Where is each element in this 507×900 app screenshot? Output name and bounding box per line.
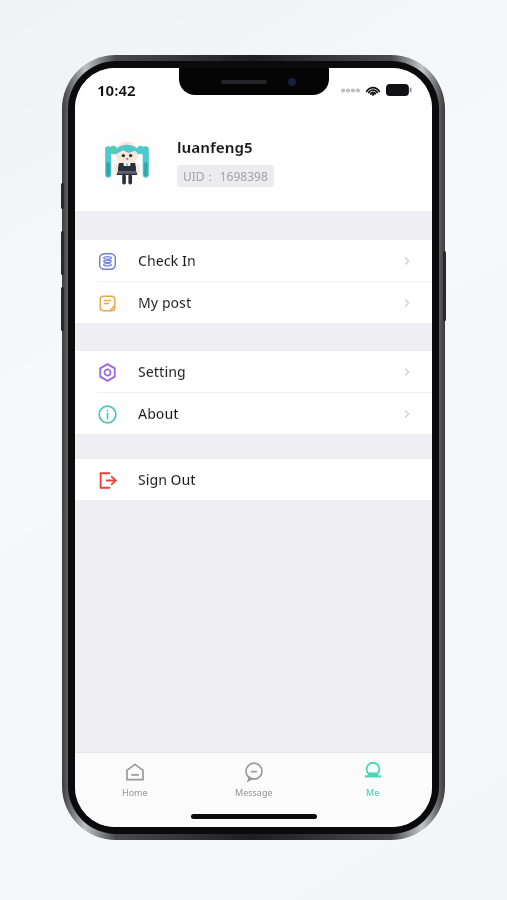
button[interactable]: Me	[313, 753, 432, 805]
staticText: Setting	[138, 362, 400, 381]
other: Open	[400, 407, 414, 421]
staticText: My post	[138, 293, 400, 312]
staticText: luanfeng5	[177, 137, 253, 157]
button[interactable]: Home	[75, 753, 194, 805]
staticText: UID： 1698398	[183, 168, 268, 184]
other: Open	[400, 254, 414, 268]
button[interactable]: Sign Out	[75, 459, 432, 500]
staticText: 10:42	[97, 80, 136, 100]
button[interactable]: Profile avatar	[75, 112, 432, 211]
button[interactable]: Message	[194, 753, 313, 805]
button[interactable]: About	[75, 393, 432, 434]
other: Open	[400, 296, 414, 310]
staticText: Message	[235, 786, 273, 798]
staticText: Sign Out	[138, 470, 414, 489]
button[interactable]: Setting	[75, 351, 432, 392]
staticText: Me	[366, 786, 380, 798]
staticText: Home	[122, 786, 148, 798]
button[interactable]: Check In	[75, 240, 432, 281]
staticText: About	[138, 404, 400, 423]
other: Open	[400, 365, 414, 379]
button[interactable]: My post	[75, 282, 432, 323]
other: Profile avatar	[99, 134, 155, 190]
staticText: Check In	[138, 251, 400, 270]
